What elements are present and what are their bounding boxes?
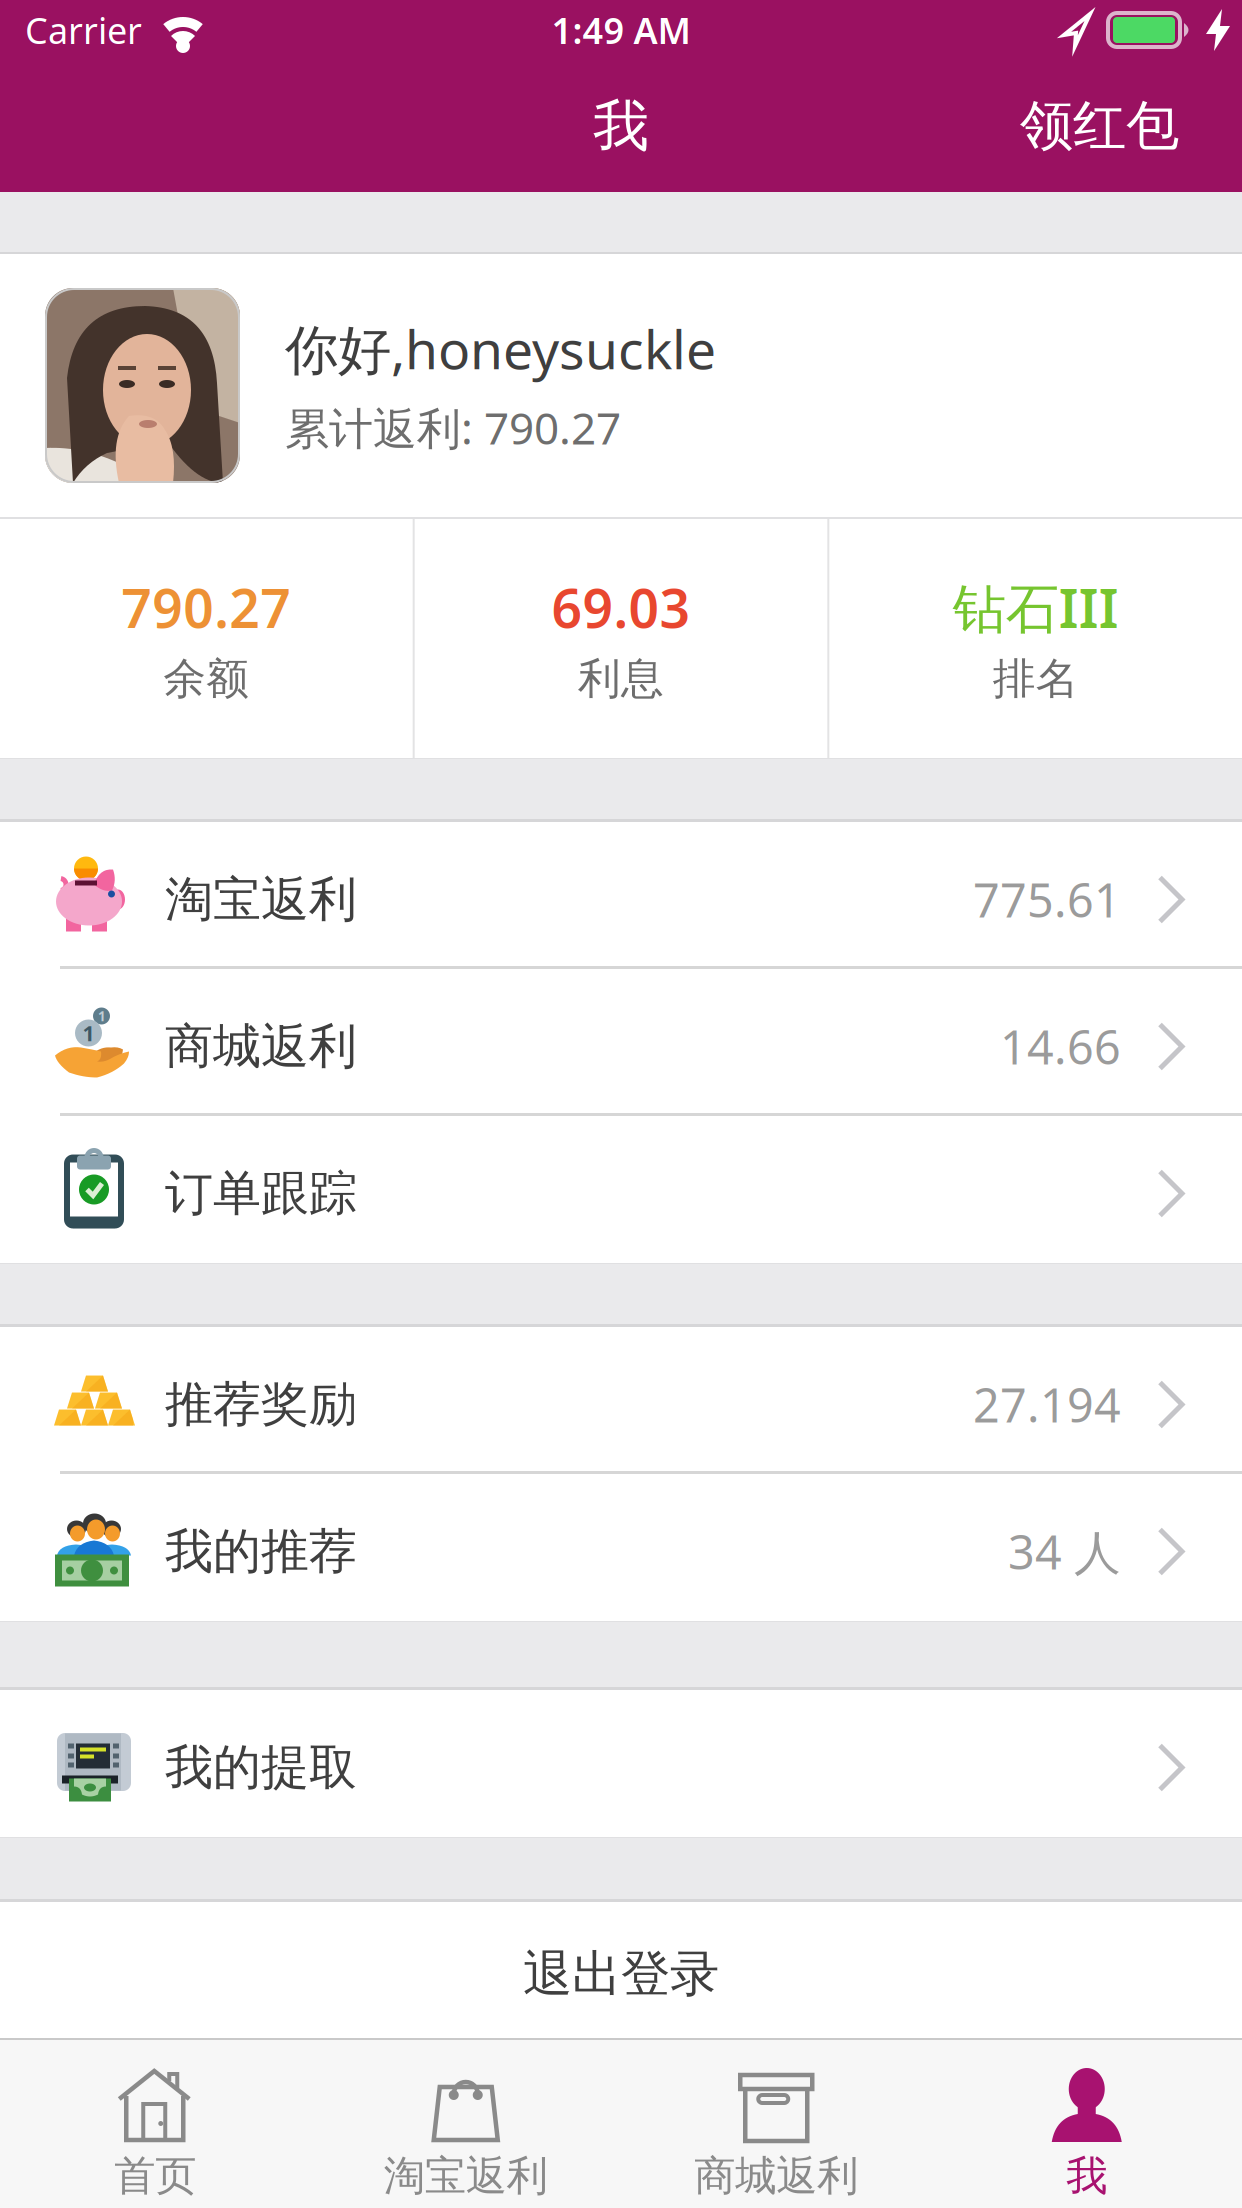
staticText: 1 (98, 1007, 106, 1025)
staticText: 69.03 (551, 572, 690, 643)
button[interactable]: 我的提取 (0, 1690, 1242, 1837)
staticText: 利息 (578, 653, 664, 705)
button[interactable]: 商城返利 (621, 2068, 931, 2198)
staticText: 我的提取 (165, 1738, 357, 1797)
staticText: 1 (82, 1019, 94, 1047)
staticText: 领红包 (1020, 93, 1179, 159)
button[interactable]: 淘宝返利 (0, 822, 1242, 969)
staticText: 淘宝返利 (384, 2151, 548, 2201)
staticText: 775.61 (973, 868, 1121, 930)
staticText: 790.27 (121, 572, 291, 643)
staticText: 1:49 AM (551, 6, 690, 54)
staticText: 我 (1066, 2151, 1107, 2201)
staticText: 商城返利 (165, 1017, 357, 1076)
staticText: 排名 (993, 653, 1079, 705)
staticText: 27.194 (973, 1373, 1121, 1435)
button[interactable]: 订单跟踪 (0, 1116, 1242, 1263)
staticText: 首页 (114, 2151, 196, 2201)
staticText: 余额 (163, 653, 249, 705)
staticText: 14.66 (1000, 1015, 1121, 1077)
staticText: 淘宝返利 (165, 870, 357, 929)
staticText: Carrier (25, 6, 142, 54)
button[interactable]: 退出登录 (0, 1902, 1242, 2038)
staticText: 商城返利 (694, 2151, 858, 2201)
button[interactable]: 首页 (0, 2068, 310, 2198)
staticText: 退出登录 (523, 1944, 719, 2004)
button[interactable]: 1 (0, 969, 1242, 1116)
button[interactable]: 我的推荐 (0, 1474, 1242, 1621)
staticText: 你好,honeysuckle (285, 313, 716, 384)
button[interactable]: 淘宝返利 (310, 2068, 621, 2198)
button[interactable]: 我 (931, 2068, 1242, 2198)
button[interactable]: 领红包 (1020, 93, 1179, 159)
staticText: 订单跟踪 (165, 1164, 357, 1223)
staticText: 34 人 (1008, 1520, 1121, 1582)
staticText: 推荐奖励 (165, 1375, 357, 1434)
staticText: 我的推荐 (165, 1522, 357, 1581)
button[interactable]: 推荐奖励 (0, 1327, 1242, 1474)
staticText: 累计返利: 790.27 (285, 398, 621, 457)
staticText: 我 (593, 92, 649, 160)
staticText: 钻石III (953, 572, 1119, 643)
